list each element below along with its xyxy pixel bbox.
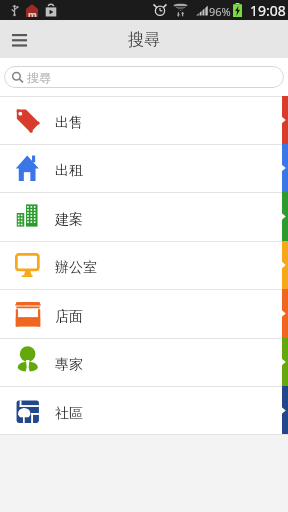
- staticText: 19:08: [250, 1, 286, 20]
- staticText: 社區: [55, 405, 83, 423]
- button[interactable]: 社區: [0, 386, 288, 435]
- button[interactable]: 店面: [0, 289, 288, 338]
- staticText: 出售: [55, 114, 83, 132]
- button[interactable]: 出租: [0, 144, 288, 192]
- staticText: 建案: [55, 211, 83, 229]
- staticText: 搜尋: [128, 30, 160, 50]
- staticText: m: [28, 8, 37, 17]
- button[interactable]: Menu: [0, 20, 38, 58]
- button[interactable]: 建案: [0, 192, 288, 241]
- staticText: 辦公室: [55, 259, 97, 277]
- staticText: 搜尋: [27, 70, 51, 85]
- staticText: 店面: [55, 308, 83, 326]
- button[interactable]: 搜尋: [4, 66, 284, 88]
- button[interactable]: 出售: [0, 96, 288, 144]
- staticText: 96%: [209, 4, 231, 19]
- staticText: 出租: [55, 162, 83, 180]
- button[interactable]: 辦公室: [0, 241, 288, 289]
- button[interactable]: 專家: [0, 338, 288, 386]
- staticText: 專家: [55, 356, 83, 374]
